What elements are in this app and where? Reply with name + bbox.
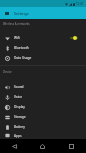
staticText: Device — [3, 70, 12, 74]
staticText: Apps — [14, 134, 22, 138]
button[interactable]: Back — [0, 139, 28, 153]
button[interactable]: Bluetooth — [0, 43, 86, 53]
button[interactable]: Apps — [0, 132, 86, 139]
staticText: 12:30 — [76, 2, 84, 6]
staticText: Wifi — [14, 36, 20, 40]
button[interactable]: Display — [0, 102, 86, 112]
staticText: Display — [14, 105, 25, 109]
staticText: Battery — [14, 125, 25, 129]
button[interactable]: Home — [28, 139, 57, 153]
staticText: Storage — [14, 115, 26, 119]
button[interactable]: Recents — [57, 139, 86, 153]
staticText: Voice — [14, 95, 22, 99]
staticText: Settings — [14, 11, 29, 16]
staticText: Bluetooth — [14, 46, 29, 50]
staticText: Sound — [14, 85, 24, 89]
button[interactable]: Sound — [0, 82, 86, 92]
button[interactable]: Voice — [0, 92, 86, 102]
button[interactable]: Wifi — [0, 33, 86, 43]
button[interactable]: Storage — [0, 112, 86, 122]
staticText: Wireless & networks — [3, 22, 30, 26]
button[interactable]: Battery — [0, 122, 86, 132]
staticText: Data Usage — [14, 56, 32, 60]
button[interactable]: Open navigation menu — [0, 7, 13, 19]
button[interactable]: Data Usage — [0, 53, 86, 63]
